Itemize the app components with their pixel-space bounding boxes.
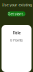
button[interactable]: Get started bbox=[7, 11, 25, 16]
staticText: 0 Points bbox=[10, 37, 23, 43]
staticText: Get started bbox=[7, 11, 25, 16]
staticText: Title bbox=[12, 30, 20, 35]
staticText: Use your existing bbox=[1, 2, 31, 7]
